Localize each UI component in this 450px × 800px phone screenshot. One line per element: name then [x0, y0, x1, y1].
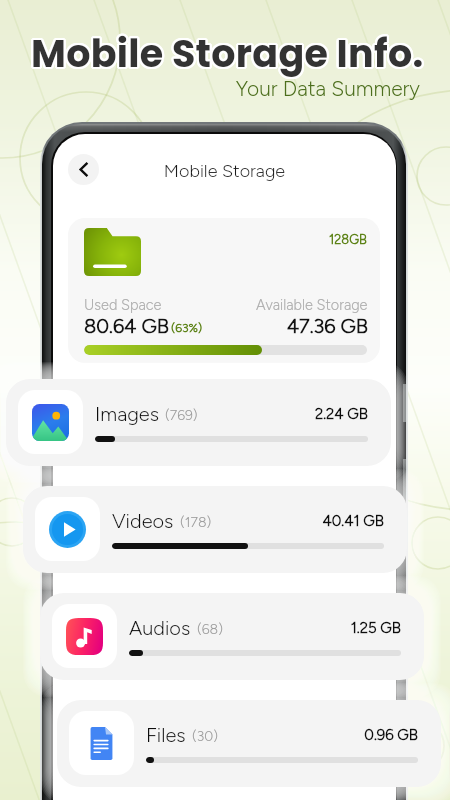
staticText: Mobile Storage Info. [32, 26, 425, 79]
staticText: Mobile Storage Info. [30, 29, 423, 82]
staticText: 40.41 GB [277, 512, 384, 530]
staticText: Mobile Storage Info. [32, 29, 425, 82]
staticText: (30) [192, 728, 218, 745]
staticText: Videos [112, 509, 174, 533]
staticText: Mobile Storage Info. [33, 28, 426, 81]
staticText: (68) [197, 621, 223, 638]
button[interactable]: 128GB [68, 218, 380, 363]
button[interactable]: Audios [40, 593, 424, 680]
staticText: Mobile Storage Info. [30, 27, 423, 80]
staticText: 1.25 GB [294, 619, 401, 637]
staticText: Mobile Storage Info. [31, 26, 424, 79]
staticText: (63%) [171, 320, 203, 335]
staticText: Audios [129, 616, 191, 640]
staticText: Used Space [84, 296, 162, 313]
staticText: Mobile Storage Info. [29, 27, 422, 80]
staticText: Mobile Storage Info. [31, 28, 424, 81]
staticText: Mobile Storage Info. [30, 26, 423, 79]
staticText: Mobile Storage Info. [31, 29, 424, 82]
button[interactable]: Files [57, 700, 441, 787]
staticText: Mobile Storage [53, 160, 396, 182]
staticText: Mobile Storage Info. [30, 28, 423, 81]
staticText: (178) [180, 514, 212, 531]
staticText: Mobile Storage Info. [32, 28, 425, 81]
staticText: Mobile Storage Info. [31, 27, 424, 80]
staticText: Mobile Storage Info. [31, 27, 424, 80]
button[interactable]: Images [6, 379, 391, 466]
staticText: 80.64 GB [84, 314, 169, 338]
staticText: Your Data Summery [0, 76, 420, 101]
staticText: Mobile Storage Info. [30, 25, 423, 78]
staticText: 47.36 GB [264, 314, 368, 338]
staticText: Mobile Storage Info. [33, 26, 426, 79]
staticText: 128GB [329, 232, 367, 247]
button[interactable]: Videos [23, 486, 407, 573]
staticText: Mobile Storage Info. [32, 27, 425, 80]
staticText: Mobile Storage Info. [29, 26, 422, 79]
staticText: Mobile Storage Info. [33, 27, 426, 80]
staticText: Mobile Storage Info. [32, 25, 425, 78]
staticText: Files [146, 723, 186, 747]
staticText: (769) [165, 407, 198, 424]
staticText: 0.96 GB [311, 726, 418, 744]
staticText: Mobile Storage Info. [31, 25, 424, 78]
staticText: 2.24 GB [261, 405, 368, 423]
staticText: Mobile Storage Info. [29, 28, 422, 81]
staticText: Images [95, 402, 159, 426]
staticText: Available Storage [256, 296, 368, 313]
button[interactable]: Back [68, 154, 99, 185]
